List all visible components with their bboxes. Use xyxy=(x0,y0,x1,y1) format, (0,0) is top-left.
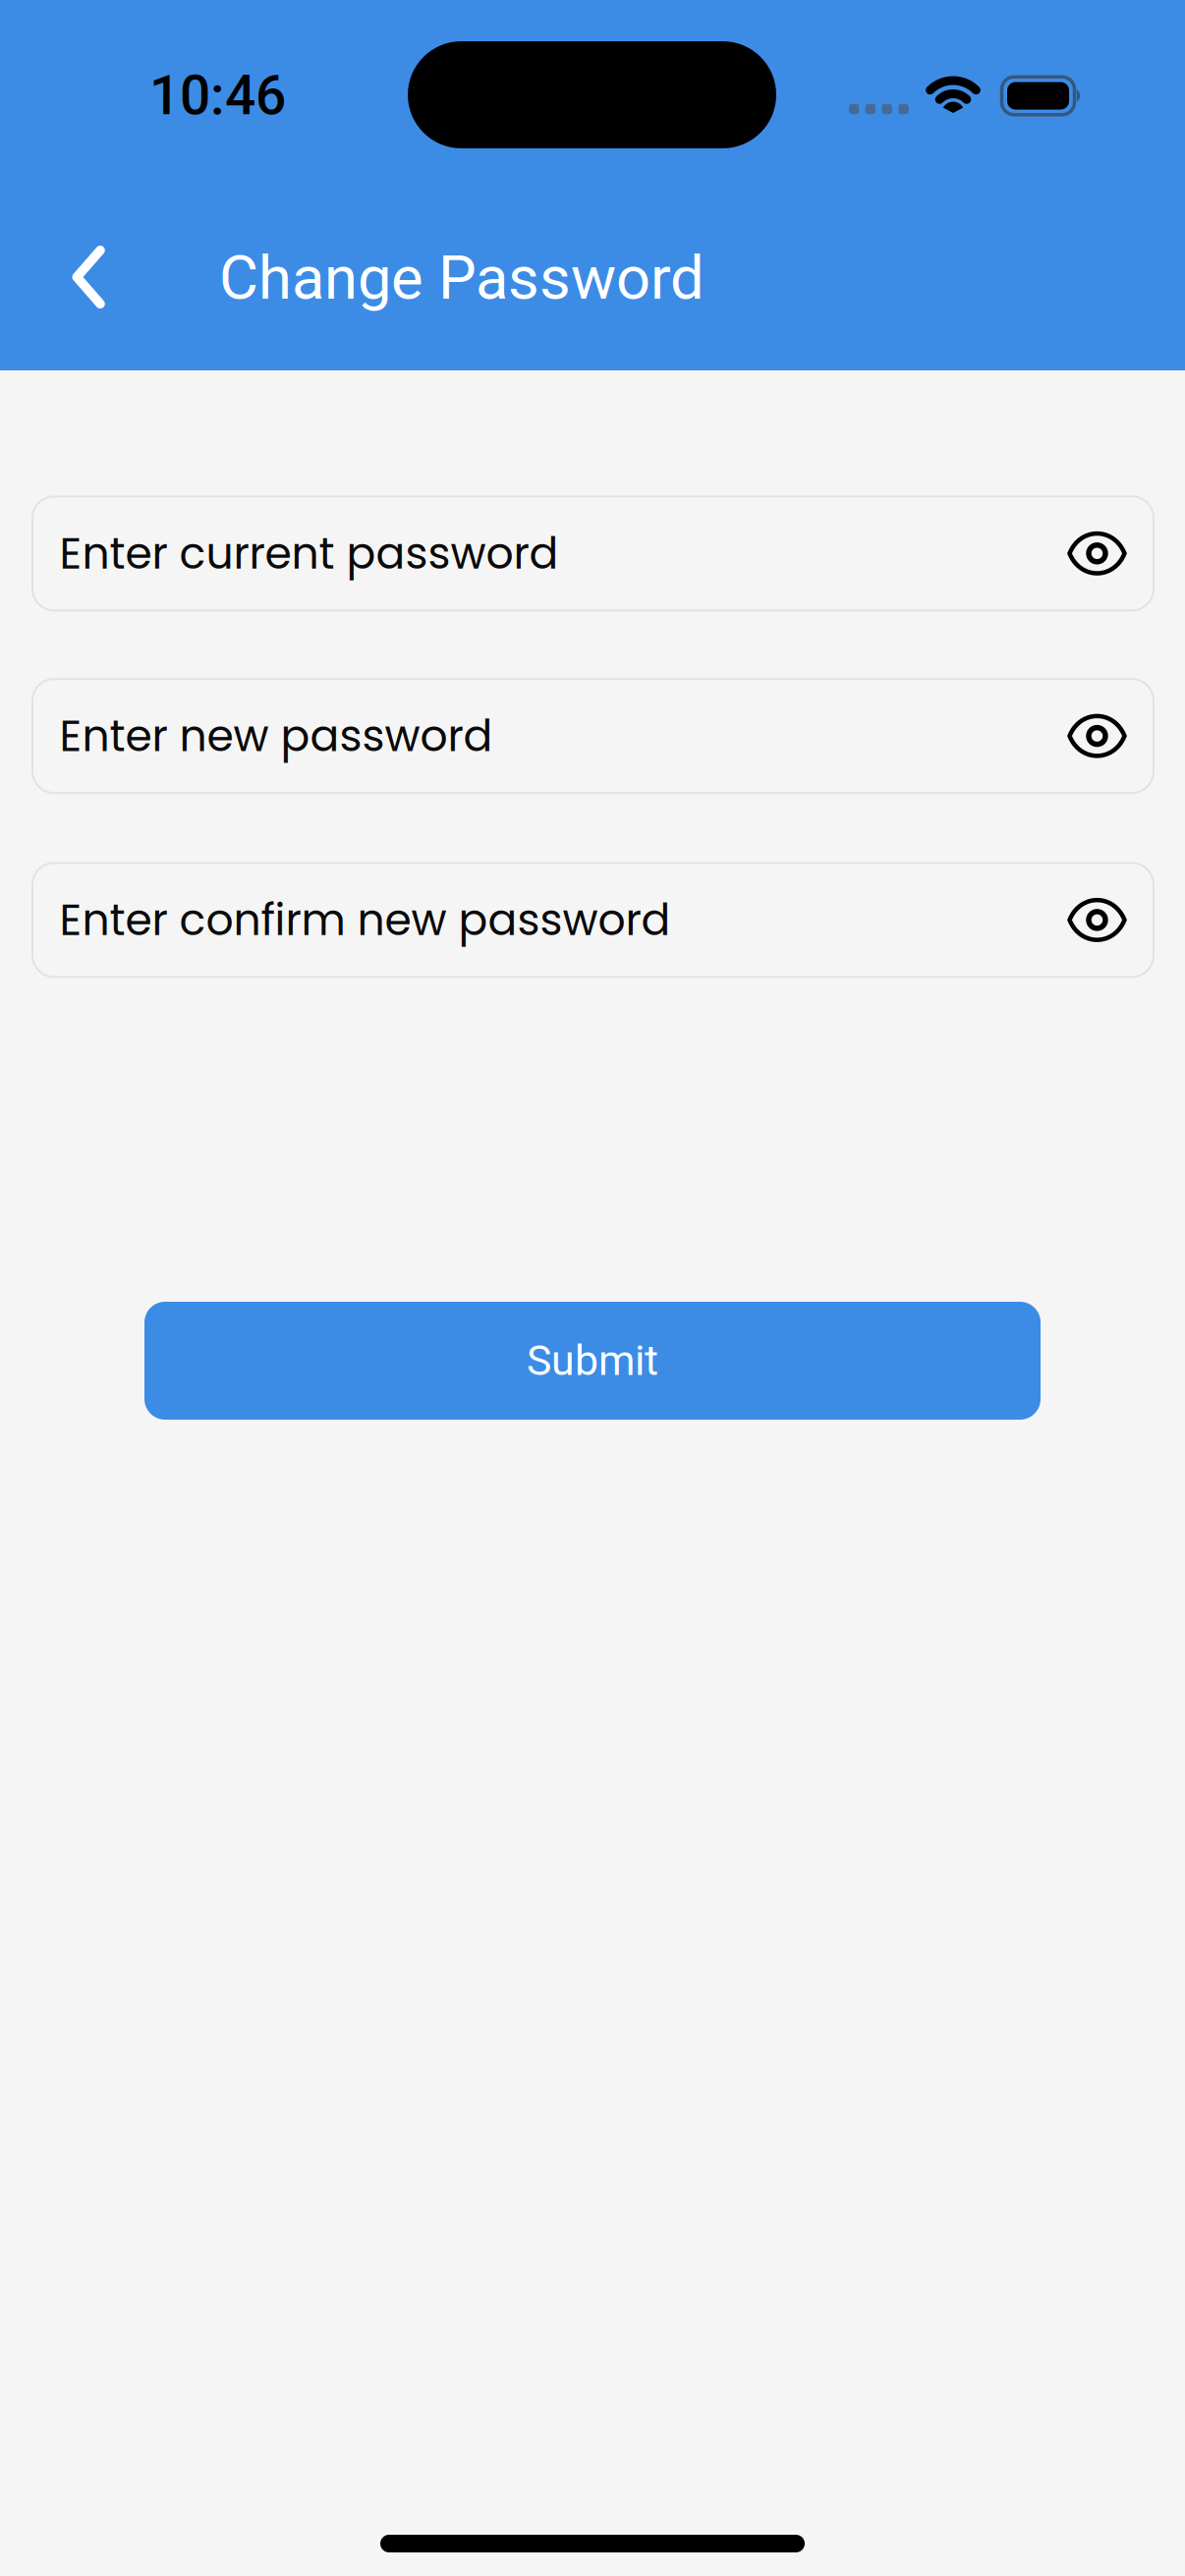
staticText: Enter current password xyxy=(59,523,559,584)
button[interactable]: Back xyxy=(72,245,105,309)
button[interactable]: Enter current password xyxy=(32,496,1154,610)
button[interactable]: Show password xyxy=(1048,863,1146,977)
staticText: Submit xyxy=(527,1336,658,1385)
button[interactable]: Show password xyxy=(1048,679,1146,793)
button[interactable]: Enter confirm new password xyxy=(32,863,1154,977)
staticText: Enter confirm new password xyxy=(59,890,671,950)
button[interactable]: Submit xyxy=(144,1302,1041,1420)
button[interactable]: Show password xyxy=(1048,496,1146,610)
staticText: 10:46 xyxy=(149,64,286,127)
button[interactable]: Enter new password xyxy=(32,679,1154,793)
staticText: Change Password xyxy=(219,243,705,313)
staticText: Enter new password xyxy=(59,706,493,766)
